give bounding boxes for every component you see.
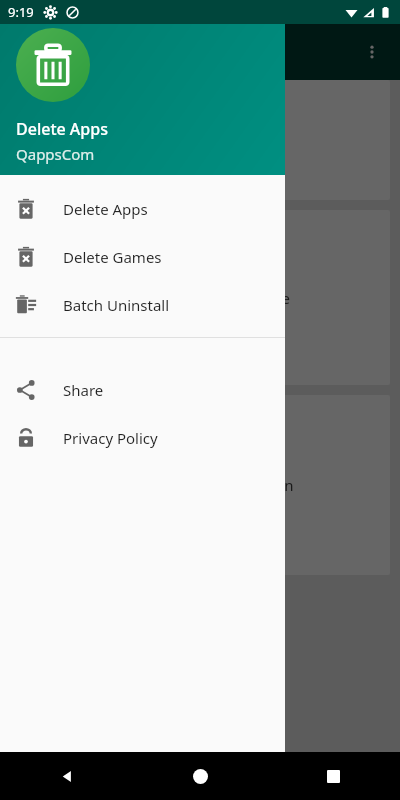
button[interactable]: Batch Uninstall — [0, 281, 285, 329]
button[interactable]: More options — [350, 30, 394, 74]
staticText: 9:19 — [8, 3, 34, 21]
staticText: QappsCom — [16, 144, 95, 164]
button[interactable]: Delete Games — [0, 233, 285, 281]
staticText: Delete Apps — [16, 118, 108, 140]
staticText: Batch Uninstall — [63, 295, 170, 315]
button[interactable]: Delete apps one by one — [10, 80, 390, 200]
button[interactable]: Uninstall apps by selection — [10, 395, 390, 575]
button[interactable]: Recents — [267, 752, 400, 800]
button[interactable]: Delete Apps — [0, 185, 285, 233]
staticText: Delete games one by one — [111, 288, 290, 308]
button[interactable]: Privacy Policy — [0, 414, 285, 462]
staticText: Uninstall apps by selection — [106, 475, 294, 495]
button[interactable]: Back — [0, 752, 134, 800]
button[interactable]: Share — [0, 366, 285, 414]
staticText: Privacy Policy — [63, 428, 158, 448]
button[interactable]: Home — [134, 752, 267, 800]
button[interactable]: Delete games one by one — [10, 210, 390, 385]
staticText: Share — [63, 380, 104, 400]
staticText: Delete Apps — [63, 199, 148, 219]
staticText: Delete Games — [63, 247, 162, 267]
